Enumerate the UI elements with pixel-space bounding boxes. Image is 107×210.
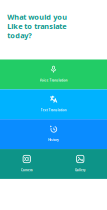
staticText: History [48,138,59,142]
staticText: Like to translate [7,21,66,31]
staticText: Camera [21,168,33,172]
staticText: What would you [7,12,67,22]
button[interactable]: Voice Translation [0,59,107,89]
button[interactable]: Camera [0,149,53,179]
button[interactable]: Text Translation [0,89,107,119]
staticText: today? [7,30,31,40]
button[interactable]: Gallery [53,149,107,179]
staticText: Gallery [75,168,86,172]
staticText: Text Translation [40,108,66,112]
staticText: Voice Translation [39,78,67,82]
button[interactable]: History [0,119,107,149]
